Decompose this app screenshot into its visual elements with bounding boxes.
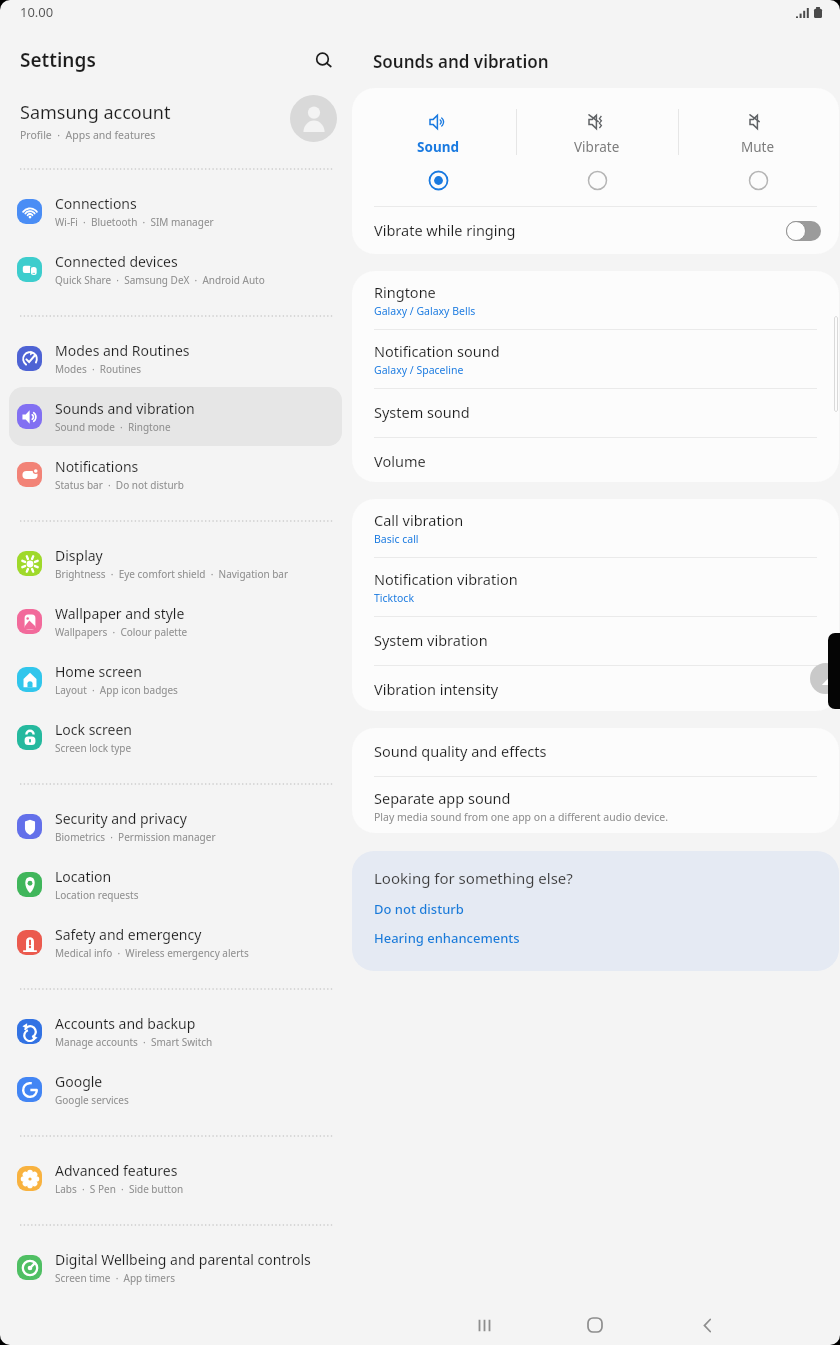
button[interactable]: Call vibration (352, 499, 839, 557)
staticText: Biometrics · Permission manager (55, 830, 216, 844)
button[interactable]: Sounds and vibration (9, 387, 342, 446)
staticText: Status bar · Do not disturb (55, 478, 184, 492)
staticText: Ringtone (374, 282, 436, 302)
button[interactable]: Location (9, 855, 342, 914)
button[interactable]: Display (9, 534, 342, 593)
staticText: Looking for something else? (374, 868, 573, 888)
staticText: Sound (417, 138, 459, 156)
staticText: Manage accounts · Smart Switch (55, 1035, 213, 1049)
button[interactable]: Edge panel (810, 663, 840, 694)
button[interactable]: Hearing enhancements (366, 925, 528, 951)
staticText: Labs · S Pen · Side button (55, 1182, 184, 1196)
staticText: Sound mode · Ringtone (55, 420, 171, 434)
button[interactable]: Separate app sound (352, 777, 839, 833)
staticText: Advanced features (55, 1161, 178, 1180)
staticText: System sound (374, 402, 470, 422)
button[interactable]: Notifications (9, 445, 342, 504)
staticText: Ticktock (374, 591, 414, 605)
staticText: Home screen (55, 662, 142, 681)
staticText: Galaxy / Spaceline (374, 363, 464, 377)
staticText: Lock screen (55, 720, 133, 739)
staticText: Galaxy / Galaxy Bells (374, 304, 476, 318)
staticText: Google (55, 1072, 103, 1091)
staticText: Layout · App icon badges (55, 683, 178, 697)
staticText: 10.00 (20, 3, 54, 21)
staticText: Digital Wellbeing and parental controls (55, 1250, 311, 1269)
button[interactable]: Connected devices (9, 240, 342, 299)
button[interactable]: Vibrate (516, 88, 678, 206)
button[interactable]: Vibration intensity (352, 666, 839, 711)
staticText: Notifications (55, 457, 139, 476)
button[interactable]: Notification sound (352, 330, 839, 388)
staticText: Sounds and vibration (373, 50, 549, 73)
staticText: Separate app sound (374, 788, 511, 808)
staticText: Vibrate while ringing (374, 220, 516, 240)
staticText: Play media sound from one app on a diffe… (374, 810, 668, 824)
button[interactable]: Advanced features (9, 1149, 342, 1208)
button[interactable]: Digital Wellbeing and parental controls (9, 1238, 342, 1297)
button[interactable]: Back (682, 1300, 732, 1345)
button[interactable]: Do not disturb (366, 896, 472, 922)
button[interactable]: Modes and Routines (9, 329, 342, 388)
button[interactable]: System sound (352, 389, 839, 437)
staticText: Medical info · Wireless emergency alerts (55, 946, 249, 960)
button[interactable]: Sound quality and effects (352, 728, 839, 776)
staticText: Sounds and vibration (55, 399, 195, 418)
staticText: System vibration (374, 630, 488, 650)
button[interactable]: Sound (357, 88, 519, 206)
button[interactable]: Security and privacy (9, 797, 342, 856)
button[interactable]: Lock screen (9, 708, 342, 767)
button[interactable]: Home (570, 1300, 620, 1345)
staticText: Settings (20, 47, 96, 73)
staticText: Modes · Routines (55, 362, 142, 376)
button[interactable] (786, 221, 821, 241)
staticText: Volume (374, 451, 426, 471)
staticText: Quick Share · Samsung DeX · Android Auto (55, 273, 265, 287)
staticText: Connected devices (55, 252, 178, 271)
staticText: Notification sound (374, 341, 500, 361)
staticText: Hearing enhancements (374, 929, 520, 947)
staticText: Security and privacy (55, 809, 187, 828)
button[interactable]: Accounts and backup (9, 1002, 342, 1061)
staticText: Location requests (55, 888, 139, 902)
button[interactable]: Home screen (9, 650, 342, 709)
staticText: Google services (55, 1093, 129, 1107)
staticText: Call vibration (374, 510, 464, 530)
button[interactable]: System vibration (352, 617, 839, 665)
staticText: Notification vibration (374, 569, 518, 589)
staticText: Brightness · Eye comfort shield · Naviga… (55, 567, 289, 581)
button[interactable]: Ringtone (352, 271, 839, 329)
staticText: Modes and Routines (55, 341, 190, 360)
staticText: Accounts and backup (55, 1014, 196, 1033)
button[interactable]: Google (9, 1060, 342, 1119)
staticText: Do not disturb (374, 900, 464, 918)
button[interactable]: Safety and emergency (9, 913, 342, 972)
staticText: Profile · Apps and features (20, 128, 156, 142)
staticText: Vibrate (574, 138, 620, 156)
staticText: Screen lock type (55, 741, 132, 755)
button[interactable]: Vibrate while ringing (352, 207, 839, 254)
staticText: Location (55, 867, 112, 886)
staticText: Mute (741, 138, 775, 156)
button[interactable]: Mute (677, 88, 839, 206)
button[interactable]: Connections (9, 182, 342, 241)
staticText: Wi-Fi · Bluetooth · SIM manager (55, 215, 214, 229)
staticText: Safety and emergency (55, 925, 202, 944)
button[interactable]: Volume (352, 438, 839, 482)
staticText: Wallpaper and style (55, 604, 185, 623)
button[interactable]: Wallpaper and style (9, 592, 342, 651)
staticText: Vibration intensity (374, 679, 499, 699)
button[interactable]: Samsung account (0, 86, 352, 152)
button[interactable]: Recents (459, 1300, 509, 1345)
staticText: Wallpapers · Colour palette (55, 625, 188, 639)
staticText: Screen time · App timers (55, 1271, 175, 1285)
staticText: Connections (55, 194, 137, 213)
button[interactable]: Notification vibration (352, 558, 839, 616)
staticText: Sound quality and effects (374, 741, 547, 761)
staticText: Display (55, 546, 103, 565)
button[interactable]: Search (304, 41, 344, 81)
staticText: Basic call (374, 532, 419, 546)
staticText: Samsung account (20, 100, 171, 125)
